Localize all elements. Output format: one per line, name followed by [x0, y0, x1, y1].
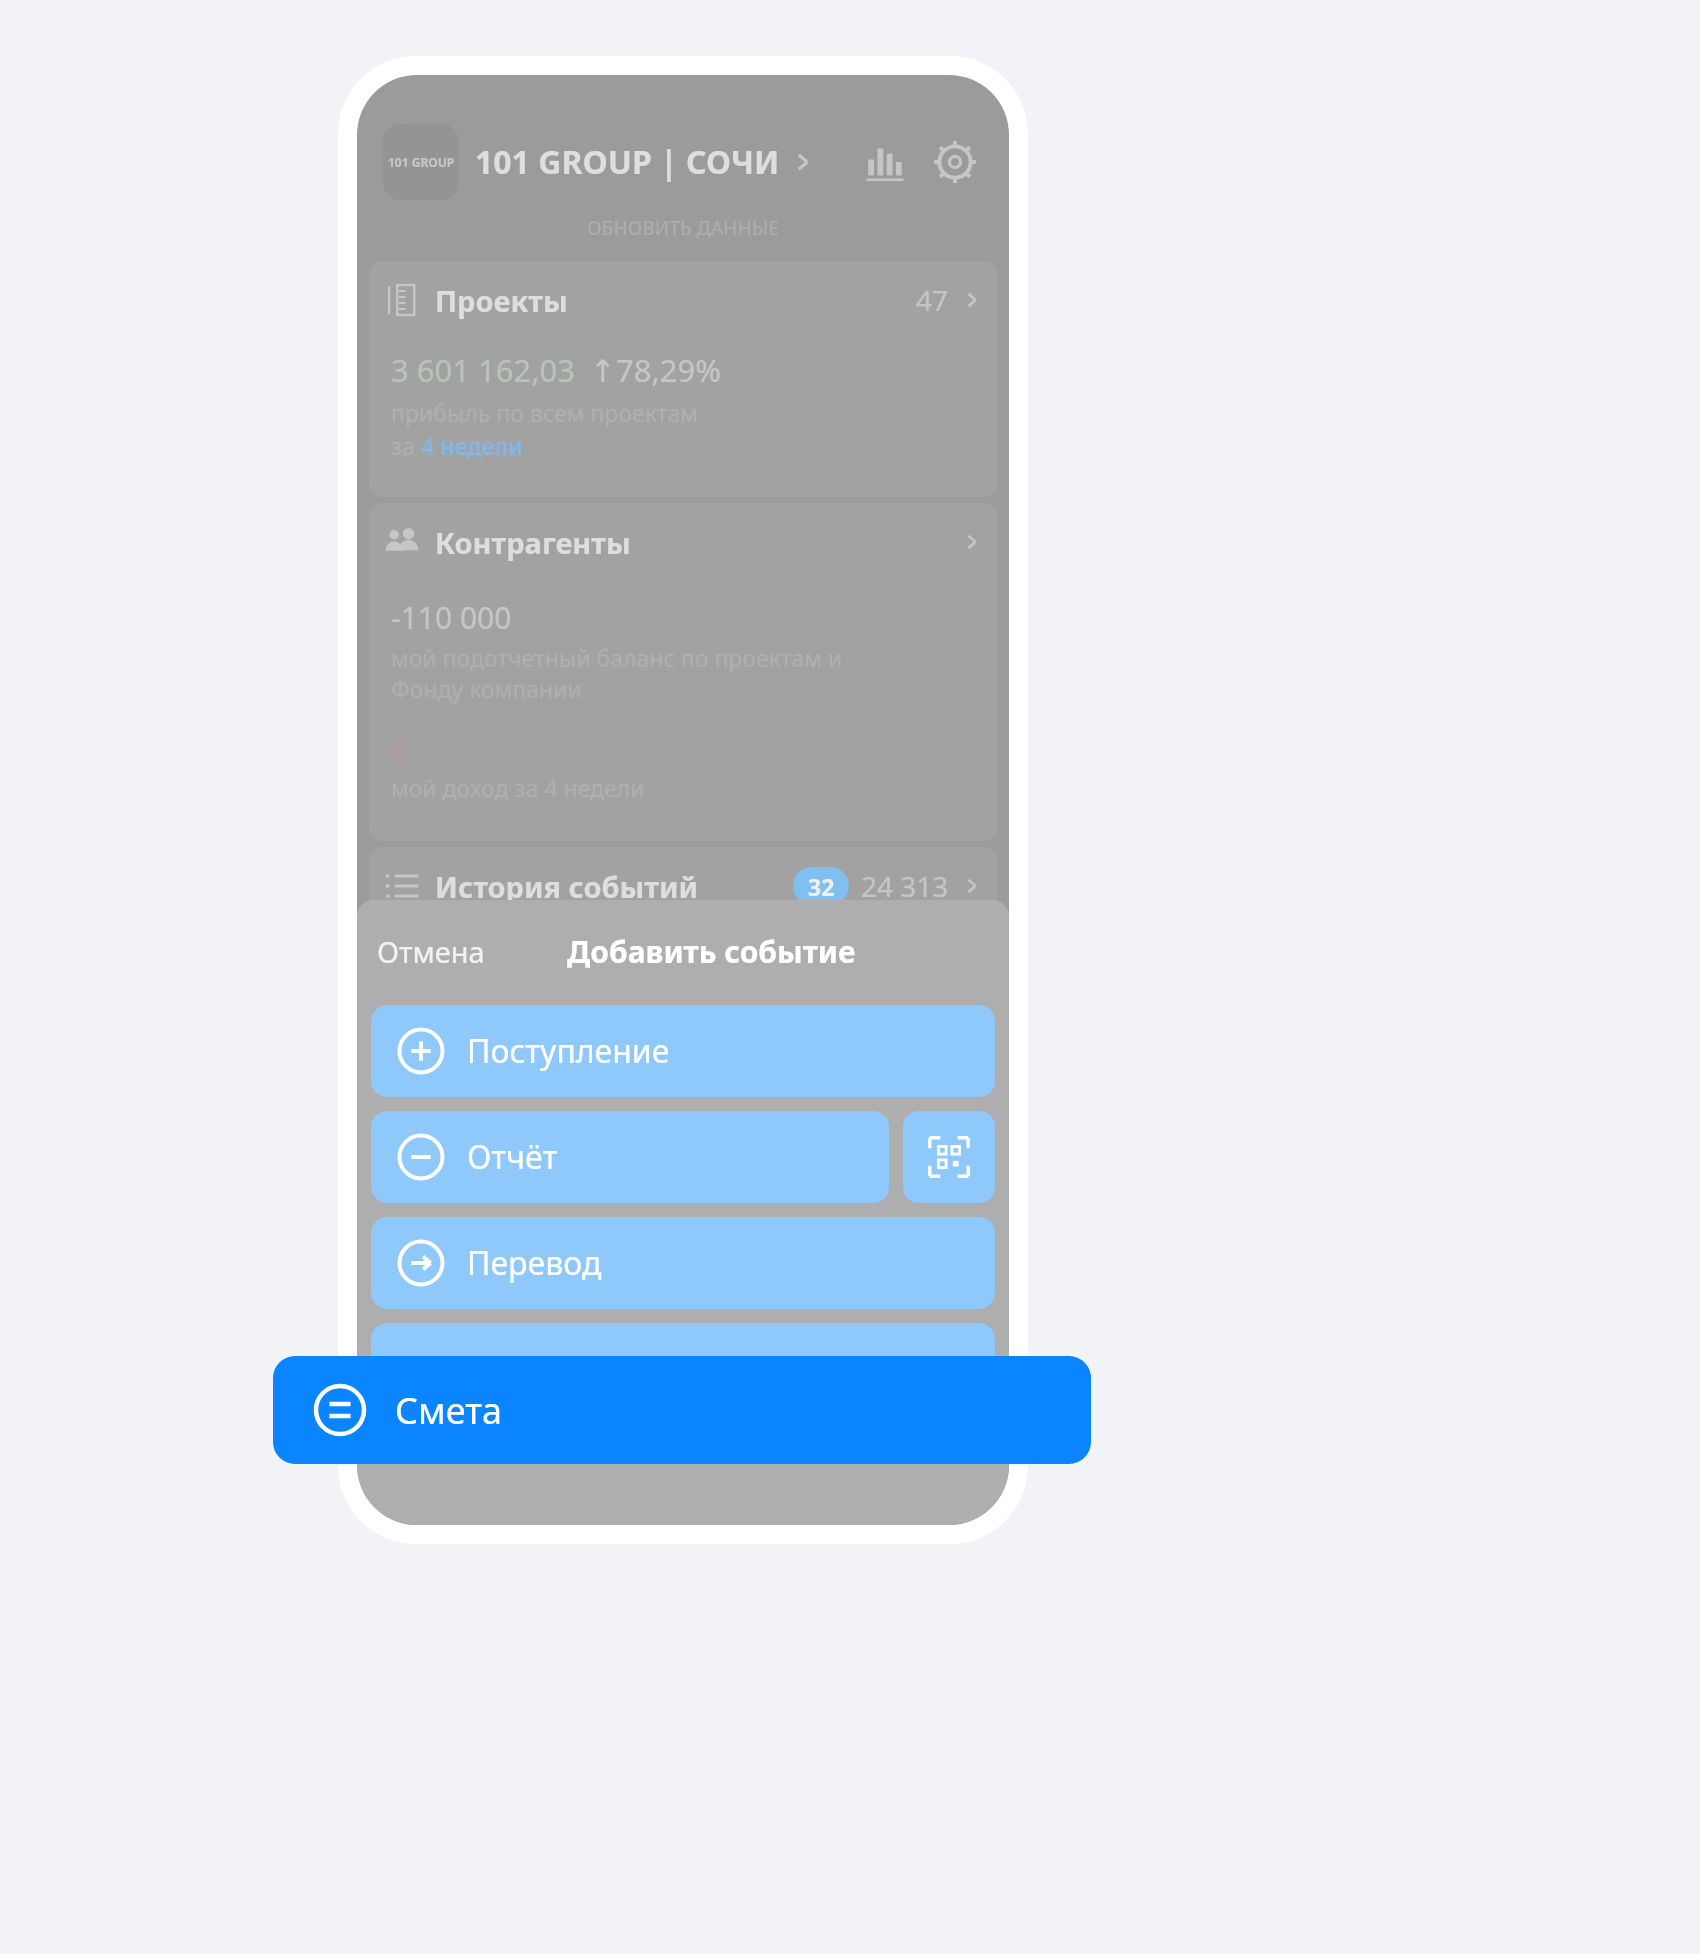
staticText: мой подотчетный баланс по проектам и [391, 642, 843, 673]
button[interactable]: Scan QR code [903, 1111, 995, 1203]
staticText: ОБНОВИТЬ ДАННЫЕ [587, 215, 779, 241]
staticText: Отчёт [467, 1135, 558, 1179]
staticText: Проекты [435, 281, 568, 320]
button[interactable]: ОБНОВИТЬ ДАННЫЕ [357, 215, 1009, 241]
staticText: 3 601 162,03 [391, 349, 576, 391]
staticText: Поступление [467, 1029, 670, 1073]
button[interactable]: Settings [927, 134, 983, 190]
button[interactable]: Перевод [371, 1217, 995, 1309]
staticText: 101 GROUP | СОЧИ [475, 140, 780, 184]
staticText: за [391, 430, 421, 461]
button[interactable]: Отмена [369, 926, 493, 977]
staticText: 0 [391, 732, 408, 770]
staticText: мой доход за 4 недели [391, 772, 645, 803]
button[interactable]: Смета [273, 1356, 1091, 1464]
staticText: Контрагенты [435, 523, 631, 562]
staticText: 24 313 [861, 867, 949, 905]
button[interactable]: 101 GROUP [383, 123, 983, 201]
staticText: Отмена [377, 932, 485, 971]
button[interactable]: Statistics [857, 134, 913, 190]
staticText: прибыль по всем проектам [391, 397, 699, 428]
button[interactable]: Прайс-листы [369, 931, 997, 1009]
button[interactable]: Проекты [369, 261, 997, 497]
staticText: 32 [808, 871, 835, 902]
staticText: 47 [916, 281, 949, 319]
staticText: ↑78,29% [590, 349, 721, 391]
button[interactable]: Отчёт [371, 1111, 889, 1203]
staticText: История событий [435, 867, 699, 906]
staticText: 4 недели [421, 430, 523, 461]
button[interactable]: История событий [369, 847, 997, 925]
staticText: Смета [395, 1386, 502, 1435]
button[interactable]: Поступление [371, 1005, 995, 1097]
staticText: Перевод [467, 1241, 602, 1285]
staticText: 101 GROUP [388, 154, 455, 170]
button[interactable]: More actions [371, 1323, 995, 1415]
staticText: -110 000 [391, 597, 512, 638]
staticText: Добавить событие [567, 931, 856, 972]
staticText: Фонду компании [391, 673, 582, 704]
button[interactable]: Контрагенты [369, 503, 997, 841]
staticText: Прайс-листы [435, 951, 630, 990]
